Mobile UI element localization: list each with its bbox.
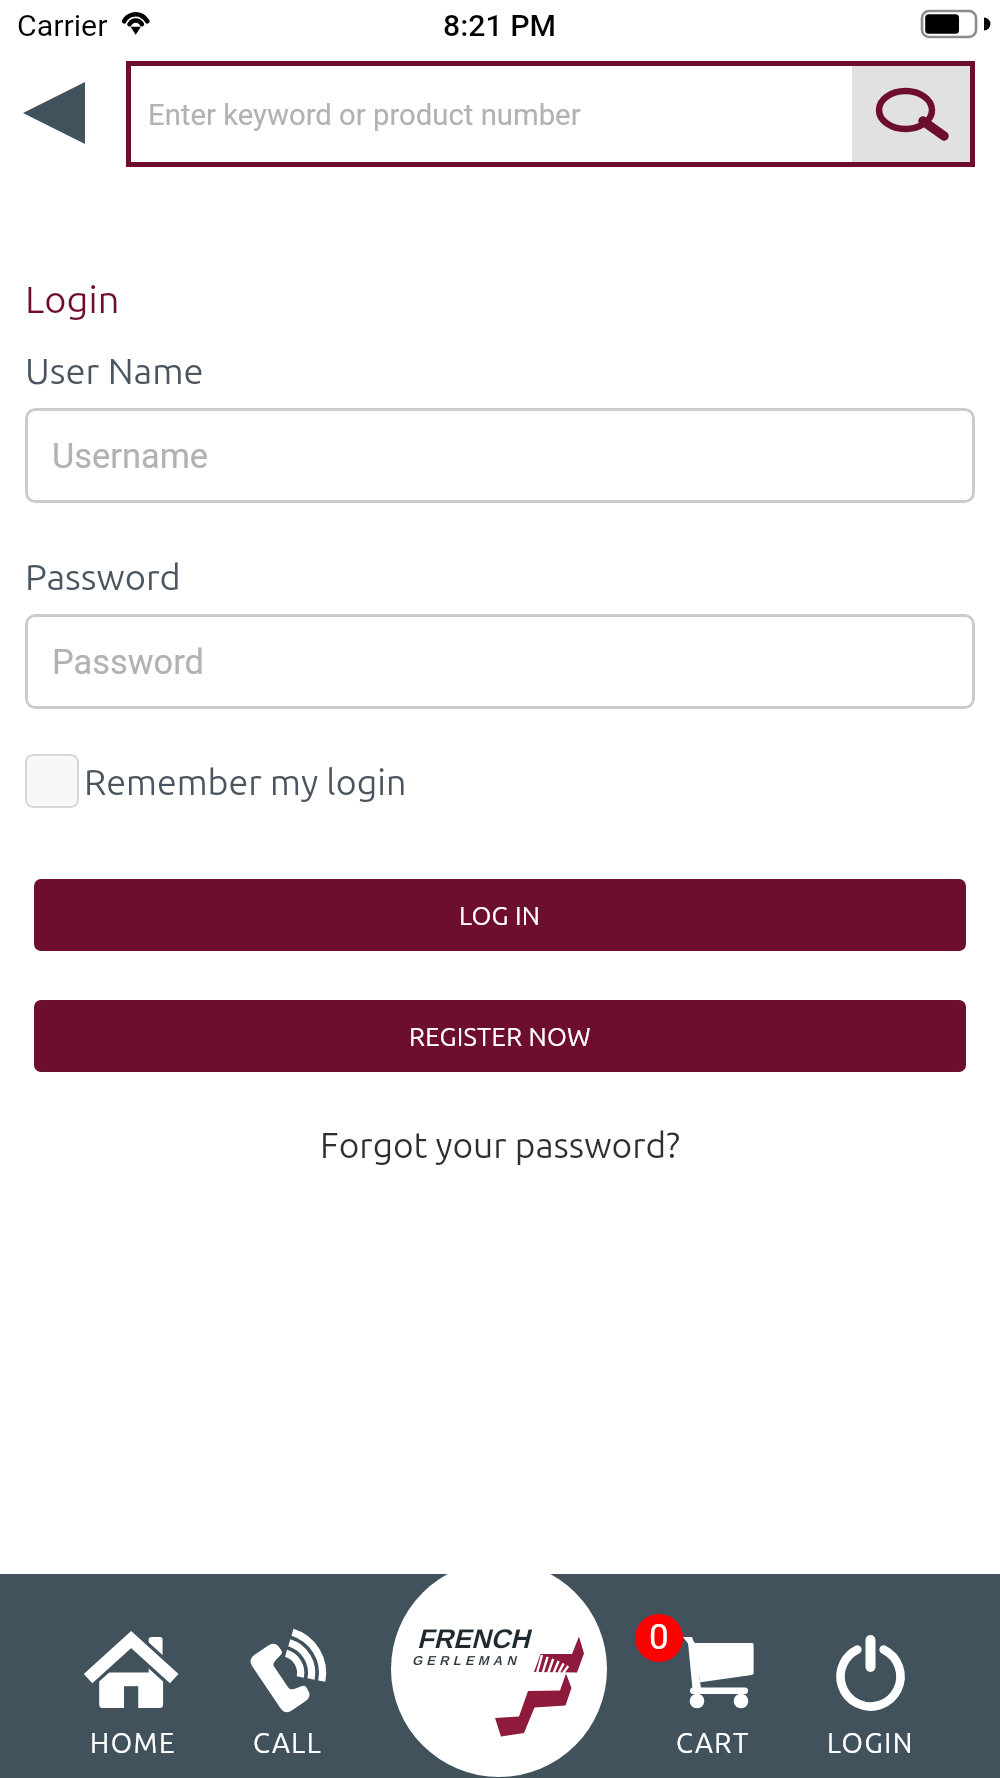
button[interactable]: CALL bbox=[212, 1580, 362, 1778]
button[interactable]: Password bbox=[25, 614, 975, 709]
button[interactable]: HOME bbox=[56, 1580, 206, 1778]
button[interactable]: Username bbox=[25, 408, 975, 503]
staticText: Forgot your password? bbox=[0, 1125, 1000, 1165]
staticText: Username bbox=[52, 436, 209, 476]
staticText: Password bbox=[25, 556, 181, 597]
staticText: User Name bbox=[25, 350, 204, 391]
button[interactable]: Search bbox=[852, 66, 970, 162]
button[interactable]: 0 bbox=[643, 1580, 793, 1778]
staticText: 0 bbox=[649, 1617, 669, 1658]
staticText: GERLEMAN bbox=[412, 1653, 520, 1668]
button[interactable]: LOGIN bbox=[795, 1580, 945, 1778]
staticText: HOME bbox=[90, 1727, 176, 1758]
button[interactable]: Back bbox=[4, 61, 108, 167]
staticText: FRENCH bbox=[417, 1624, 530, 1654]
staticText: Remember my login bbox=[84, 762, 407, 802]
button[interactable]: REGISTER NOW bbox=[34, 1000, 966, 1072]
staticText: Enter keyword or product number bbox=[148, 98, 581, 132]
staticText: CALL bbox=[253, 1727, 323, 1758]
button[interactable]: LOG IN bbox=[34, 879, 966, 951]
staticText: 8:21 PM bbox=[443, 8, 557, 44]
staticText: CART bbox=[676, 1727, 750, 1758]
button[interactable]: Forgot your password? bbox=[0, 1125, 1000, 1181]
staticText: LOGIN bbox=[827, 1727, 914, 1758]
staticText: REGISTER NOW bbox=[409, 1022, 591, 1051]
staticText: LOG IN bbox=[459, 901, 541, 930]
staticText: Password bbox=[52, 642, 204, 682]
button[interactable]: French Gerleman bbox=[391, 1561, 607, 1777]
staticText: Carrier bbox=[17, 8, 108, 44]
button[interactable]: Remember my login bbox=[20, 748, 480, 814]
staticText: Login bbox=[25, 278, 120, 321]
